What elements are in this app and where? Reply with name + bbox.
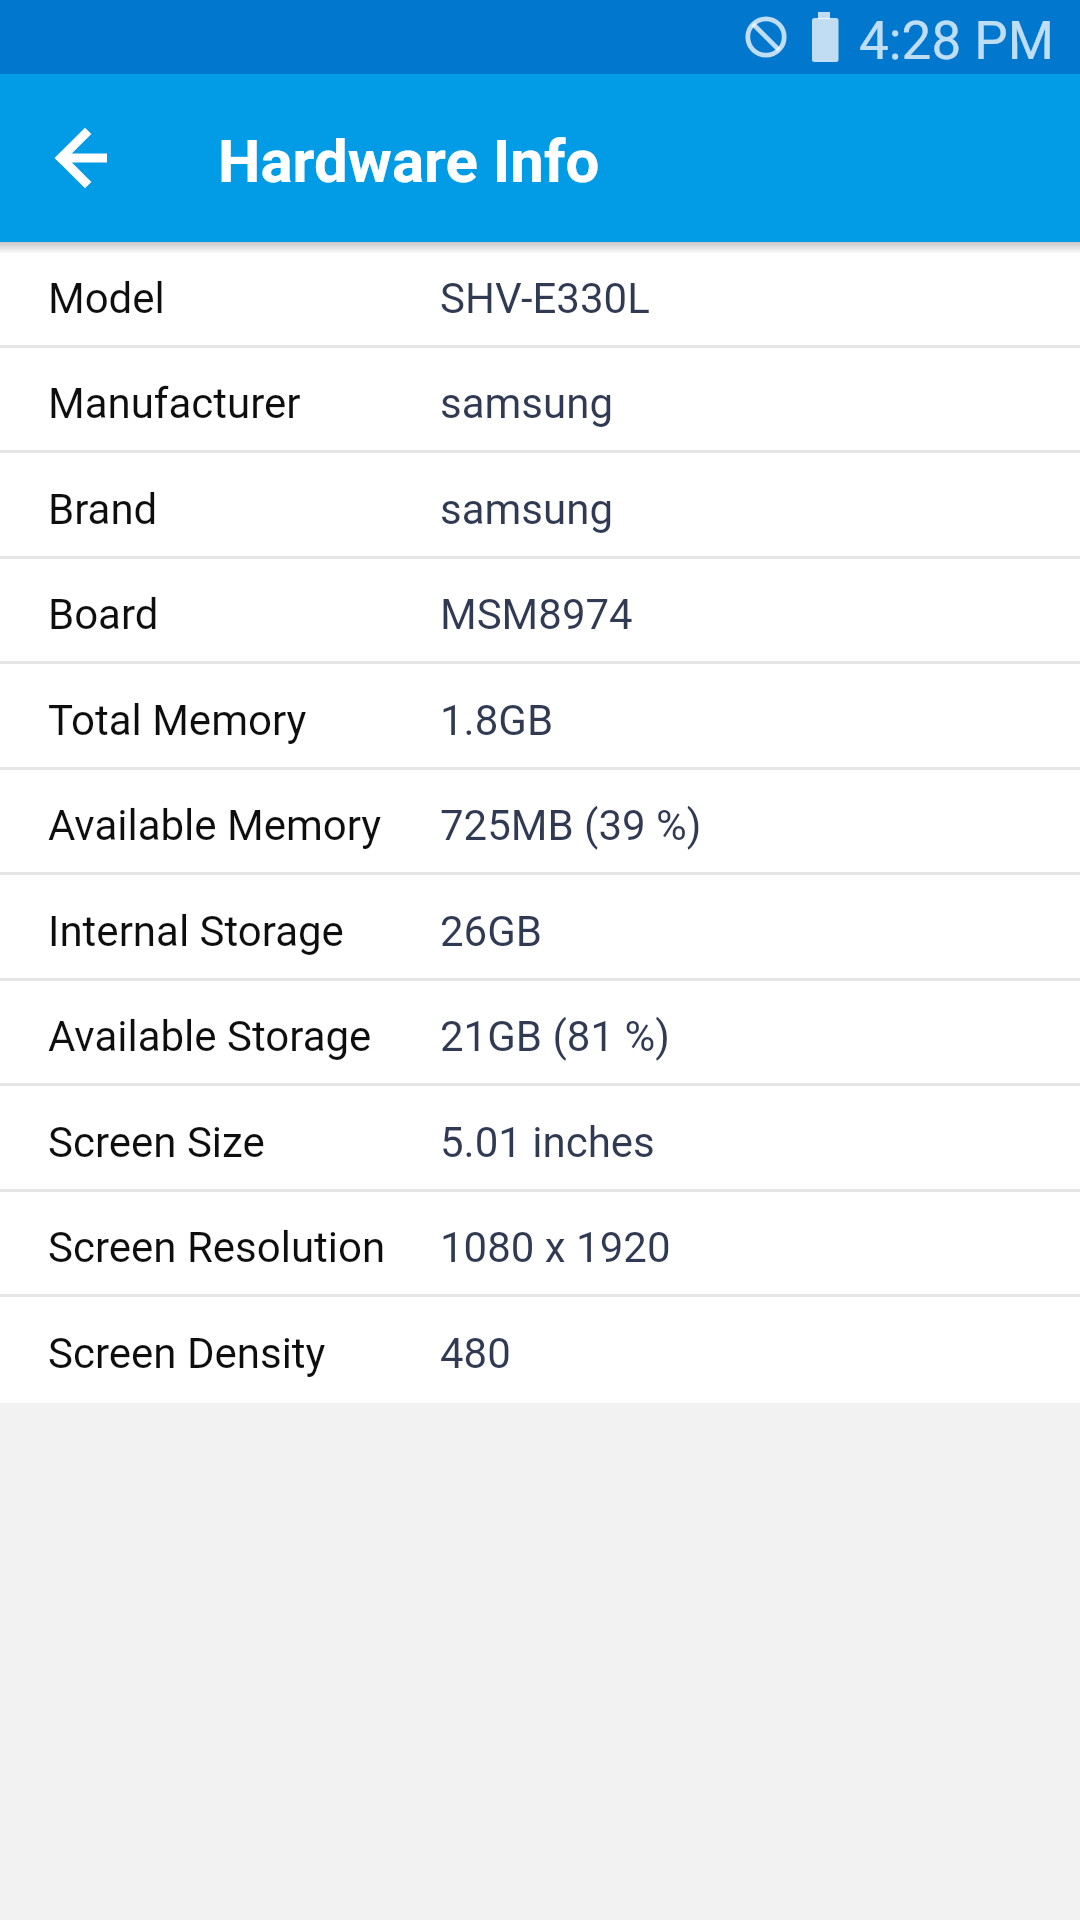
button[interactable]: Model: [0, 242, 1080, 348]
staticText: MSM8974: [440, 590, 633, 639]
staticText: Model: [48, 274, 165, 323]
staticText: Screen Density: [48, 1329, 326, 1378]
staticText: samsung: [440, 485, 613, 534]
staticText: 1.8GB: [440, 696, 554, 745]
button[interactable]: Screen Resolution: [0, 1192, 1080, 1297]
staticText: SHV-E330L: [440, 274, 650, 323]
staticText: Available Storage: [48, 1012, 372, 1061]
button[interactable]: Internal Storage: [0, 875, 1080, 981]
staticText: Screen Size: [48, 1118, 265, 1167]
staticText: Total Memory: [48, 696, 307, 745]
staticText: 725MB (39 %): [440, 801, 702, 850]
button[interactable]: Manufacturer: [0, 348, 1080, 453]
staticText: 5.01 inches: [440, 1118, 655, 1167]
button[interactable]: Total Memory: [0, 664, 1080, 770]
staticText: Board: [48, 590, 159, 639]
staticText: 21GB (81 %): [440, 1012, 670, 1061]
staticText: Screen Resolution: [48, 1223, 386, 1272]
button[interactable]: Screen Size: [0, 1086, 1080, 1192]
staticText: Manufacturer: [48, 379, 301, 428]
button[interactable]: Screen Density: [0, 1297, 1080, 1403]
button[interactable]: Brand: [0, 453, 1080, 559]
button[interactable]: Available Memory: [0, 770, 1080, 875]
staticText: 480: [440, 1329, 511, 1378]
staticText: 4:28 PM: [859, 10, 1055, 72]
button[interactable]: [36, 110, 132, 206]
staticText: samsung: [440, 379, 613, 428]
button[interactable]: Board: [0, 559, 1080, 664]
staticText: Brand: [48, 485, 158, 534]
staticText: Hardware Info: [218, 126, 600, 196]
staticText: Internal Storage: [48, 907, 344, 956]
staticText: Available Memory: [48, 801, 382, 850]
staticText: 1080 x 1920: [440, 1223, 671, 1272]
button[interactable]: Available Storage: [0, 981, 1080, 1086]
staticText: 26GB: [440, 907, 542, 956]
